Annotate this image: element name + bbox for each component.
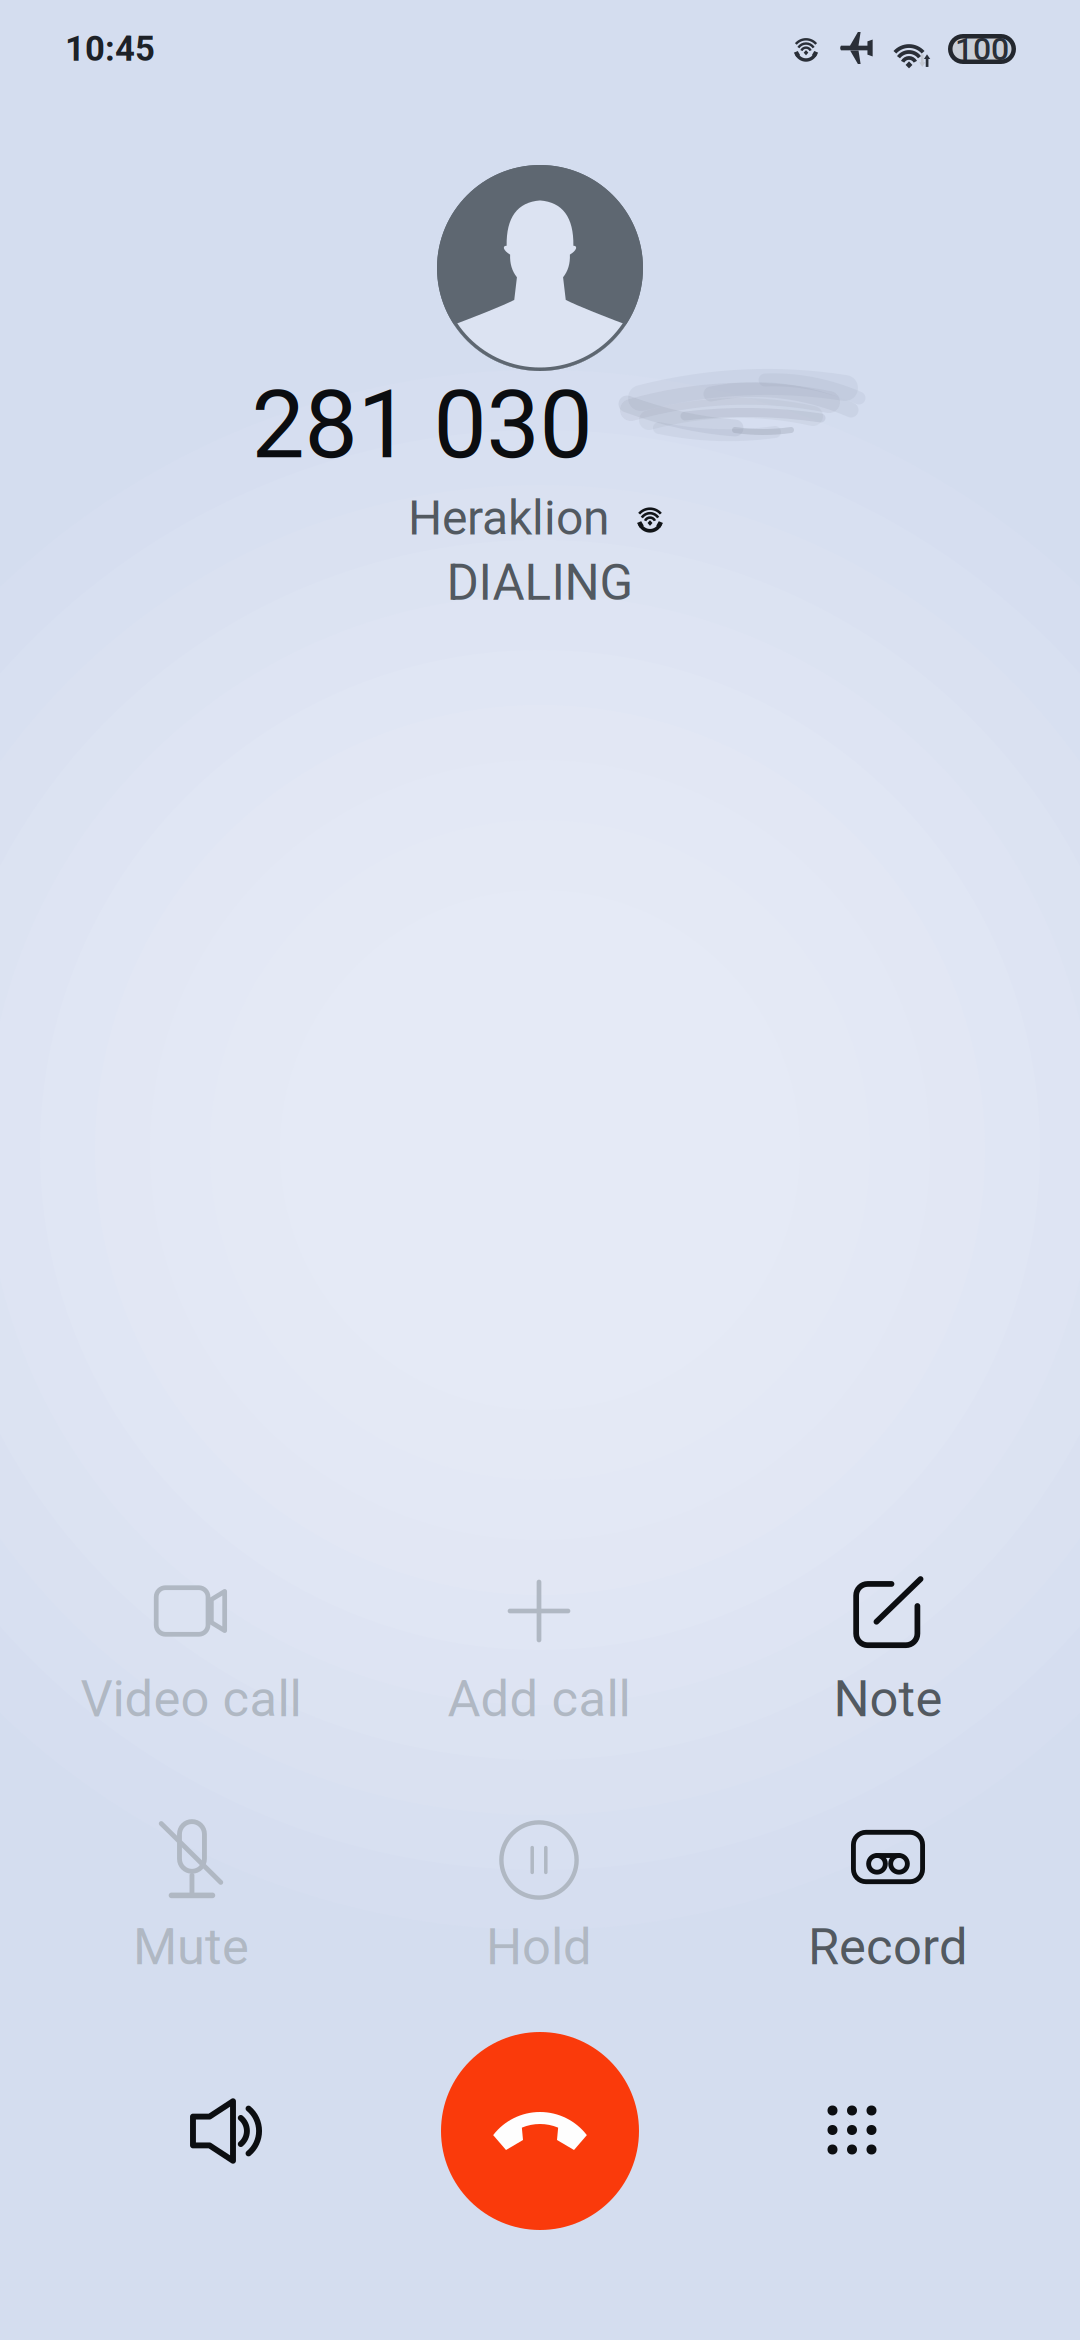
staticText: Video call: [80, 1669, 301, 1729]
staticText: DIALING: [446, 554, 633, 612]
button[interactable]: End call: [441, 2032, 639, 2230]
button[interactable]: Hold: [379, 1760, 699, 1960]
button[interactable]: Record: [728, 1757, 1048, 1957]
staticText: 100: [955, 30, 1009, 68]
staticText: 10:45: [65, 29, 155, 69]
button[interactable]: Keypad: [767, 2045, 937, 2215]
staticText: Heraklion: [408, 490, 610, 546]
button[interactable]: Add call: [379, 1511, 699, 1711]
button[interactable]: Speaker: [148, 2046, 318, 2216]
staticText: Mute: [133, 1917, 249, 1977]
button[interactable]: Note: [728, 1513, 1048, 1713]
staticText: Note: [833, 1669, 942, 1729]
staticText: Add call: [447, 1669, 630, 1729]
button[interactable]: Video call: [31, 1511, 351, 1711]
staticText: Hold: [486, 1917, 592, 1977]
staticText: Record: [808, 1917, 968, 1977]
button[interactable]: Mute: [31, 1758, 351, 1958]
staticText: 281 030: [251, 369, 592, 480]
